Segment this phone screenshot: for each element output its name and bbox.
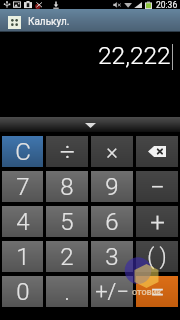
button[interactable]: Калькул. xyxy=(0,9,180,32)
staticText: − xyxy=(150,172,165,202)
button[interactable]: . xyxy=(46,276,88,307)
staticText: 9 xyxy=(105,173,119,201)
button[interactable]: 3 xyxy=(91,241,133,272)
button[interactable]: 8 xyxy=(46,171,88,202)
staticText: Калькул. xyxy=(28,16,70,28)
button[interactable]: Show history xyxy=(0,117,180,132)
staticText: = xyxy=(150,277,165,307)
button[interactable]: + xyxy=(136,206,178,237)
staticText: 5 xyxy=(60,208,74,236)
button[interactable]: 2 xyxy=(46,241,88,272)
staticText: × xyxy=(106,139,118,165)
button[interactable]: 0 xyxy=(2,276,43,307)
button[interactable]: 5 xyxy=(46,206,88,237)
button[interactable]: 6 xyxy=(91,206,133,237)
staticText: C xyxy=(15,138,31,166)
staticText: 0 xyxy=(16,278,30,306)
button[interactable]: × xyxy=(91,136,133,167)
staticText: 20:36 xyxy=(156,0,178,9)
staticText: +/− xyxy=(95,279,129,305)
staticText: + xyxy=(150,207,165,237)
button[interactable]: − xyxy=(136,171,178,202)
staticText: 22,222 xyxy=(98,41,171,70)
button[interactable]: 1 xyxy=(2,241,43,272)
button[interactable]: ( ) xyxy=(136,241,178,272)
staticText: ( ) xyxy=(147,244,167,270)
staticText: 2 xyxy=(60,243,74,271)
staticText: 8 xyxy=(60,173,74,201)
button[interactable]: 22,222 xyxy=(0,32,180,117)
staticText: 4 xyxy=(16,208,30,236)
button[interactable]: +/− xyxy=(91,276,133,307)
staticText: 3 xyxy=(105,243,119,271)
button[interactable]: Delete xyxy=(136,136,178,167)
staticText: . xyxy=(64,278,70,306)
staticText: 6 xyxy=(105,208,119,236)
button[interactable]: 4 xyxy=(2,206,43,237)
staticText: ОТОВИК xyxy=(132,288,162,297)
staticText: 7 xyxy=(16,173,30,201)
button[interactable]: 7 xyxy=(2,171,43,202)
staticText: ÷ xyxy=(60,137,75,167)
staticText: 1 xyxy=(16,243,30,271)
button[interactable]: = xyxy=(136,276,178,307)
button[interactable]: C xyxy=(2,136,43,167)
button[interactable]: 9 xyxy=(91,171,133,202)
button[interactable]: ÷ xyxy=(46,136,88,167)
